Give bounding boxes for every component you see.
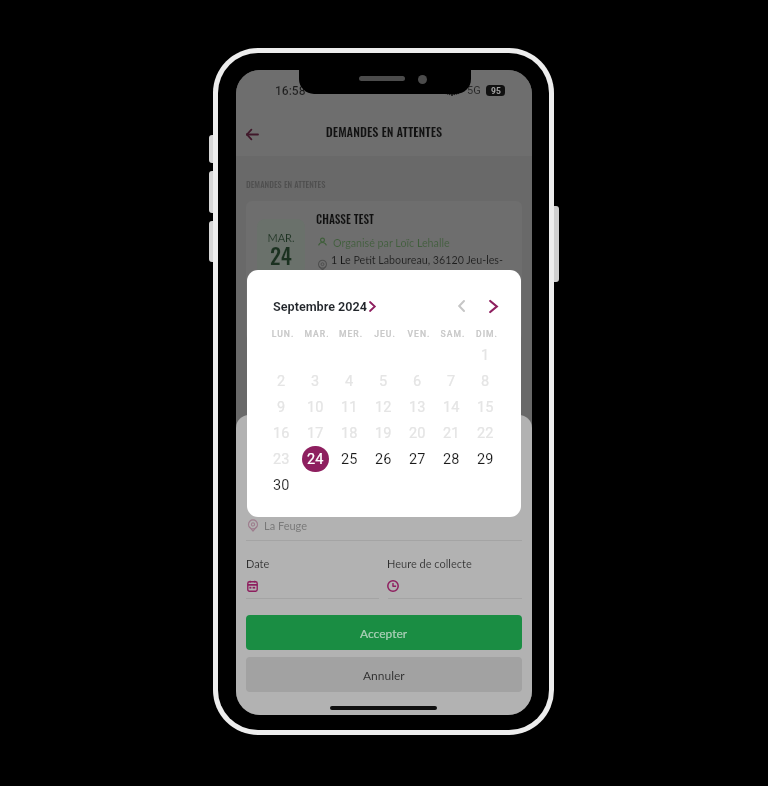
staticText: 11 (341, 399, 358, 416)
staticText: 24 (257, 239, 305, 272)
button[interactable]: 27 (404, 446, 431, 472)
button[interactable]: 8 (472, 368, 499, 394)
staticText: 15 (477, 399, 494, 416)
button[interactable]: Next month (482, 295, 504, 317)
staticText: 23 (273, 451, 290, 468)
staticText: Accepter (360, 626, 408, 640)
staticText: 3 (311, 373, 320, 390)
button[interactable]: 24 (302, 446, 329, 472)
button[interactable]: 19 (370, 420, 397, 446)
button[interactable]: Back (237, 119, 267, 149)
staticText: SAM. (436, 329, 470, 339)
button[interactable]: Annuler (246, 657, 522, 692)
button[interactable]: 3 (302, 368, 329, 394)
button[interactable]: Pick date (243, 577, 261, 595)
button[interactable]: 20 (404, 420, 431, 446)
staticText: 16:58 (275, 84, 306, 98)
button[interactable]: Previous month (450, 295, 472, 317)
staticText: 6 (413, 373, 422, 390)
staticText: JEU. (368, 329, 402, 339)
staticText: MER. (334, 329, 368, 339)
staticText: MAR. (300, 329, 334, 339)
button[interactable]: 22 (472, 420, 499, 446)
button[interactable]: 2 (268, 368, 295, 394)
button[interactable]: MAR. (246, 201, 522, 341)
button[interactable]: 15 (472, 394, 499, 420)
button[interactable]: 28 (438, 446, 465, 472)
staticText: 7 (447, 373, 456, 390)
staticText: 26 (375, 451, 392, 468)
staticText: 28 (443, 451, 460, 468)
button[interactable]: 10 (302, 394, 329, 420)
button[interactable]: 14 (438, 394, 465, 420)
staticText: 13 (409, 399, 426, 416)
staticText: 16 (273, 425, 290, 442)
staticText: Organisé par Loïc Lehalle (333, 236, 450, 249)
button[interactable]: 13 (404, 394, 431, 420)
staticText: 22 (477, 425, 494, 442)
staticText: 8 (481, 373, 490, 390)
staticText: 29 (477, 451, 494, 468)
staticText: 10 (307, 399, 324, 416)
staticText: 5G (467, 84, 481, 97)
staticText: 2 (277, 373, 286, 390)
button[interactable]: Accepter (246, 615, 522, 650)
staticText: 14 (443, 399, 460, 416)
staticText: VEN. (402, 329, 436, 339)
button[interactable]: 1 (472, 342, 499, 368)
button[interactable]: 4 (336, 368, 363, 394)
staticText: LUN. (266, 329, 300, 339)
staticText: MAR. (257, 231, 305, 244)
button[interactable]: 17 (302, 420, 329, 446)
staticText: Date (246, 557, 270, 570)
staticText: 4 (345, 373, 354, 390)
button[interactable]: 11 (336, 394, 363, 420)
staticText: 19 (375, 425, 392, 442)
staticText: DEMANDES EN ATTENTES (246, 178, 326, 191)
button[interactable]: 26 (370, 446, 397, 472)
staticText: 27 (409, 451, 426, 468)
button[interactable]: 21 (438, 420, 465, 446)
button[interactable]: 29 (472, 446, 499, 472)
button[interactable]: 23 (268, 446, 295, 472)
staticText: 18 (341, 425, 358, 442)
button[interactable]: 12 (370, 394, 397, 420)
button[interactable]: 18 (336, 420, 363, 446)
staticText: 95 (491, 86, 501, 96)
staticText: Annuler (363, 668, 405, 682)
staticText: 17 (307, 425, 324, 442)
button[interactable]: 7 (438, 368, 465, 394)
button[interactable]: Pick time (384, 577, 402, 595)
staticText: 5 (379, 373, 388, 390)
staticText: 21 (443, 425, 460, 442)
staticText: CHASSE TEST (316, 211, 375, 228)
staticText: Heure de collecte (387, 557, 472, 570)
staticText: 30 (273, 477, 290, 494)
button[interactable]: 16 (268, 420, 295, 446)
button[interactable]: 9 (268, 394, 295, 420)
staticText: DEMANDES EN ATTENTES (236, 122, 532, 140)
staticText: La Feuge (264, 519, 308, 532)
button[interactable]: 25 (336, 446, 363, 472)
button[interactable]: 30 (268, 472, 295, 498)
staticText: 1 (481, 347, 490, 364)
staticText: Septembre 2024 (273, 299, 368, 314)
staticText: 24 (307, 451, 324, 468)
staticText: 1 Le Petit Laboureau, 36120 Jeu-les- (331, 253, 503, 266)
staticText: 25 (341, 451, 358, 468)
button[interactable]: 5 (370, 368, 397, 394)
staticText: 20 (409, 425, 426, 442)
button[interactable]: 6 (404, 368, 431, 394)
button[interactable]: Septembre 2024 (273, 299, 376, 314)
staticText: 12 (375, 399, 392, 416)
staticText: DIM. (470, 329, 504, 339)
staticText: 9 (277, 399, 286, 416)
